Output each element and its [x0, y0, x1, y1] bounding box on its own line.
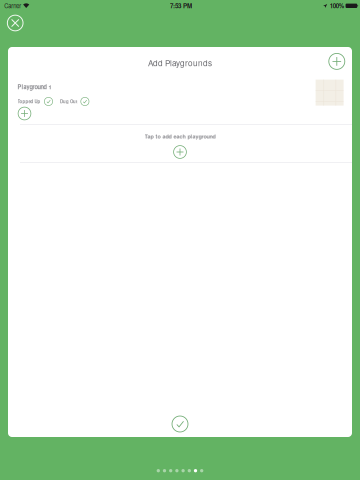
button[interactable]: Tap to add each playground: [8, 125, 352, 162]
staticText: Carrier: [4, 2, 21, 10]
button[interactable]: Done: [166, 410, 194, 438]
staticText: Playground 1: [17, 83, 51, 91]
button[interactable]: Close: [2, 10, 28, 36]
staticText: 7:53 PM: [170, 1, 192, 10]
button[interactable]: Add playground: [324, 48, 350, 74]
button[interactable]: Add to Playground 1: [14, 103, 34, 123]
staticText: 100%: [330, 1, 344, 10]
staticText: Add Playgrounds: [148, 57, 212, 68]
staticText: Tap to add each playground: [144, 132, 215, 140]
staticText: Topped Up: [18, 98, 41, 104]
staticText: Dug Out: [60, 98, 77, 104]
